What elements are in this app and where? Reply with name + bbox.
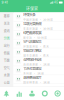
staticText: 关注 xyxy=(4,21,10,26)
button[interactable]: 空气质量报告 xyxy=(13,39,64,48)
button[interactable]: 环保头条 xyxy=(13,12,64,21)
button[interactable]: 空气 xyxy=(0,64,13,72)
staticText: 水利部 · 3天前 xyxy=(23,71,44,75)
staticText: 生态环境部 · 3小时前 xyxy=(23,27,53,30)
staticText: 空气 xyxy=(4,66,10,70)
button[interactable]: 资讯 xyxy=(0,27,13,35)
staticText: 低碳出行倡议 xyxy=(23,48,41,53)
staticText: 垃圾分类新规 xyxy=(23,21,41,26)
button[interactable]: 节水社会建设 xyxy=(13,66,64,75)
button[interactable]: 森林覆盖提升 xyxy=(13,75,64,84)
button[interactable]: 社区 xyxy=(26,87,38,100)
staticText: 9:41 xyxy=(1,1,7,4)
button[interactable]: 节能 xyxy=(0,57,13,64)
staticText: 水源 xyxy=(4,73,10,77)
button[interactable]: 湿地保护成效 xyxy=(13,57,64,66)
staticText: 城市交通局 · 昨天 xyxy=(23,54,49,57)
staticText: 森林覆盖提升 xyxy=(23,75,41,80)
button[interactable]: 回收 xyxy=(38,87,51,100)
button[interactable]: 低碳 xyxy=(0,49,13,57)
staticText: 湿地保护成效 xyxy=(23,57,41,62)
staticText: 节能 xyxy=(4,58,10,63)
staticText: 中国环境报 · 2小时前 xyxy=(23,18,53,21)
staticText: 资讯 xyxy=(4,29,10,33)
button[interactable]: 推荐 xyxy=(0,12,13,20)
button[interactable]: 低碳出行倡议 xyxy=(13,48,64,57)
staticText: 环境监测站 · 昨天 xyxy=(23,45,49,48)
staticText: 推荐 xyxy=(4,14,10,18)
staticText: 分类 xyxy=(4,36,10,40)
staticText: 国家林草局 · 3天前 xyxy=(23,80,50,84)
staticText: 4G xyxy=(54,1,58,4)
staticText: 公益 xyxy=(4,81,10,85)
button[interactable]: 首页 xyxy=(0,87,13,100)
staticText: 环保家 xyxy=(26,6,38,12)
staticText: 新华社 · 5小时前 xyxy=(23,36,47,39)
button[interactable]: 出行 xyxy=(0,42,13,49)
staticText: 空气质量报告 xyxy=(23,39,41,44)
button[interactable]: 分类 xyxy=(0,35,13,42)
staticText: 节水社会建设 xyxy=(23,66,41,71)
button[interactable]: 公益 xyxy=(0,79,13,86)
staticText: 出行 xyxy=(4,44,10,48)
staticText: 绿色能源发展 xyxy=(23,30,41,35)
button[interactable]: 我的 xyxy=(51,87,64,100)
button[interactable]: 水源 xyxy=(0,72,13,79)
staticText: 环保头条 xyxy=(23,12,35,17)
button[interactable]: 垃圾分类新规 xyxy=(13,21,64,30)
staticText: 低碳 xyxy=(4,51,10,55)
button[interactable]: 数据 xyxy=(13,87,26,100)
staticText: 自然资源部 · 2天前 xyxy=(23,62,50,66)
button[interactable]: 绿色能源发展 xyxy=(13,30,64,39)
button[interactable]: 关注 xyxy=(0,20,13,27)
